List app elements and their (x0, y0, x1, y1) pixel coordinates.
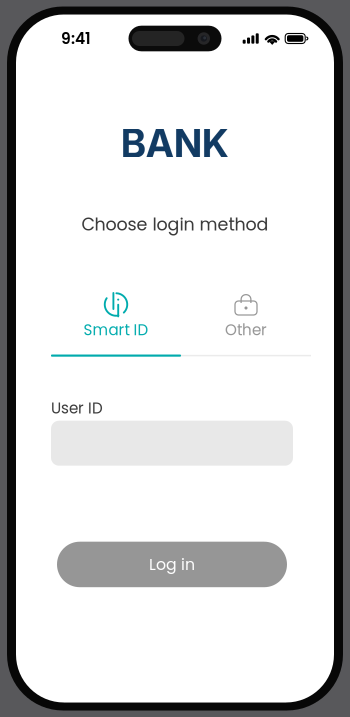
staticText: 9:41 (61, 28, 91, 49)
staticText: BANK (121, 120, 229, 167)
staticText: Choose login method (81, 212, 268, 237)
staticText: User ID (51, 398, 103, 419)
button[interactable]: Other (181, 291, 311, 354)
button[interactable]: Log in (16, 542, 334, 587)
staticText: Other (225, 319, 267, 341)
staticText: Log in (149, 553, 195, 575)
staticText: Smart ID (83, 319, 148, 341)
button[interactable]: Smart ID (51, 291, 181, 354)
